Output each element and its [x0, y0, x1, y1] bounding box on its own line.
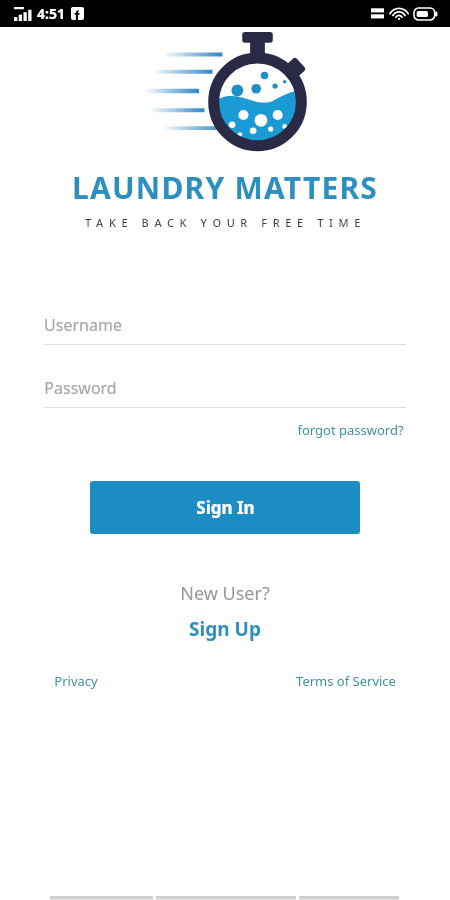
button[interactable]: Sign Up — [181, 614, 269, 644]
button[interactable]: Username — [44, 314, 406, 345]
staticText: Password — [44, 377, 117, 399]
other: Battery — [414, 8, 438, 20]
staticText: Sign Up — [189, 616, 261, 642]
staticText: LAUNDRY MATTERS — [72, 167, 378, 208]
other: Facebook — [71, 7, 84, 20]
other: Signal strength — [14, 7, 32, 21]
staticText: Sign In — [196, 496, 255, 519]
staticText: New User? — [180, 581, 270, 606]
button[interactable]: Terms of Service — [292, 668, 400, 694]
other: Wi-Fi — [391, 7, 407, 20]
staticText: Terms of Service — [296, 672, 396, 690]
button[interactable]: Password — [44, 377, 406, 408]
staticText: TAKE BACK YOUR FREE TIME — [85, 215, 366, 230]
other: VoLTE — [371, 7, 384, 20]
button[interactable]: forgot password? — [295, 418, 406, 442]
button[interactable]: Privacy — [50, 668, 102, 694]
staticText: Privacy — [54, 672, 98, 690]
staticText: 4:51 — [37, 4, 65, 23]
staticText: Username — [44, 314, 122, 336]
button[interactable]: Sign In — [90, 481, 360, 534]
staticText: forgot password? — [297, 421, 404, 439]
